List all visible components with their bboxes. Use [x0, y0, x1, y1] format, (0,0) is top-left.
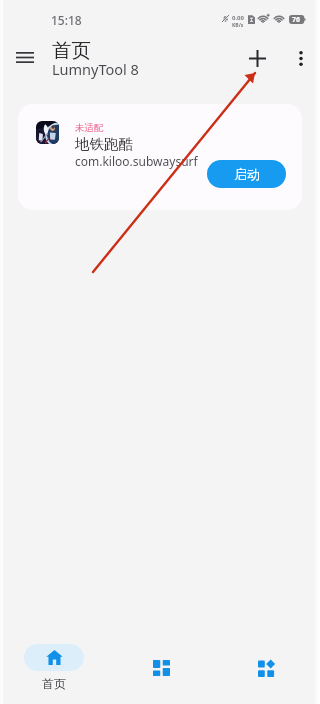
button[interactable]: 启动	[207, 160, 286, 188]
staticText: 首页	[52, 38, 91, 63]
staticText: 76	[292, 15, 301, 24]
button[interactable]: More options	[281, 38, 320, 78]
staticText: 15:18	[51, 12, 82, 28]
staticText: 首页	[42, 676, 66, 691]
button[interactable]: 未适配	[18, 104, 302, 210]
staticText: com.kiloo.subwaysurf	[75, 153, 198, 169]
staticText: 未适配	[75, 122, 104, 134]
staticText: KB/s	[232, 22, 244, 29]
button[interactable]: Apps	[121, 644, 201, 691]
button[interactable]: 首页	[14, 644, 94, 691]
staticText: 启动	[234, 166, 260, 182]
staticText: 0.00	[232, 14, 244, 22]
button[interactable]: Add	[237, 38, 277, 78]
staticText: 地铁跑酷	[75, 135, 133, 153]
staticText: LumnyTool 8	[52, 59, 139, 79]
button[interactable]: Plugins	[227, 644, 307, 691]
button[interactable]: Menu	[5, 37, 45, 77]
